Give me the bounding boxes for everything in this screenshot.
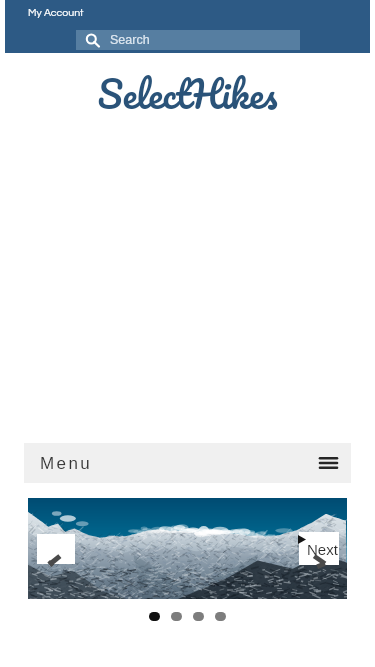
- button[interactable]: Slide 4: [215, 612, 226, 621]
- button[interactable]: Slide 2: [171, 612, 182, 621]
- button[interactable]: Next slide: [299, 532, 339, 565]
- staticText: Menu: [40, 454, 93, 473]
- staticText: Search: [110, 33, 150, 47]
- button[interactable]: Previous slide: [37, 534, 75, 564]
- button[interactable]: Open menu: [313, 448, 343, 478]
- button[interactable]: Menu: [24, 443, 351, 483]
- button[interactable]: Slide 1: [149, 612, 160, 621]
- button[interactable]: My Account: [28, 7, 84, 18]
- button[interactable]: Search: [76, 30, 300, 50]
- staticText: SelectHikes: [97, 62, 278, 125]
- staticText: Next: [307, 541, 338, 558]
- button[interactable]: Slide 3: [193, 612, 204, 621]
